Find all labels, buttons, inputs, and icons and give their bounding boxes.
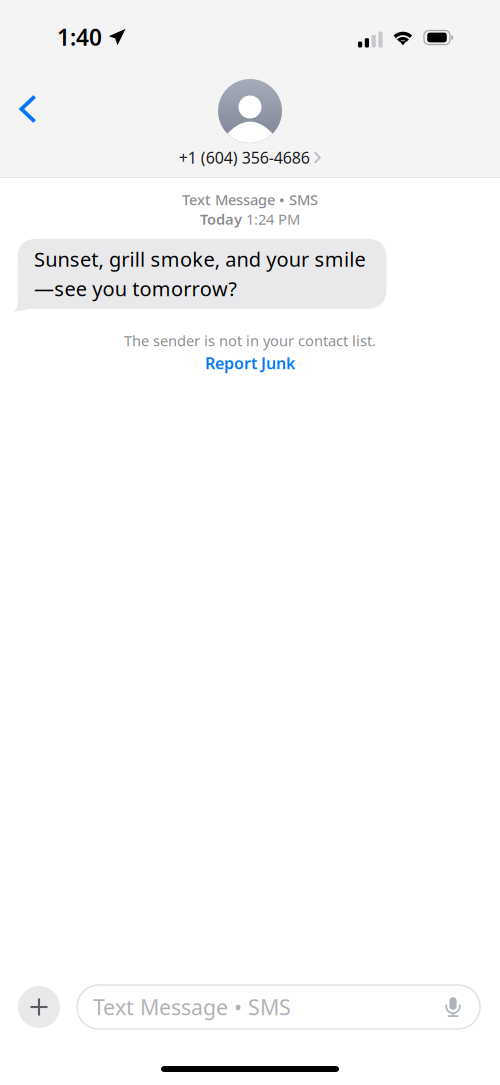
button[interactable]: +1 (604) 356-4686 bbox=[179, 79, 321, 168]
button[interactable]: Back bbox=[5, 86, 51, 132]
staticText: Sunset, grill smoke, and your smile —see… bbox=[34, 246, 365, 302]
staticText: Text Message • SMS bbox=[93, 993, 291, 1021]
button[interactable]: Dictate bbox=[438, 990, 468, 1024]
staticText: +1 (604) 356-4686 bbox=[179, 147, 310, 168]
staticText: Today 1:24 PM bbox=[200, 209, 300, 229]
staticText: 1:40 bbox=[57, 22, 102, 52]
staticText: The sender is not in your contact list. bbox=[124, 331, 376, 350]
button[interactable]: Report Junk bbox=[205, 352, 295, 374]
button[interactable]: Add attachment bbox=[18, 986, 60, 1028]
staticText: Report Junk bbox=[205, 352, 295, 374]
staticText: Text Message • SMS bbox=[182, 190, 318, 209]
